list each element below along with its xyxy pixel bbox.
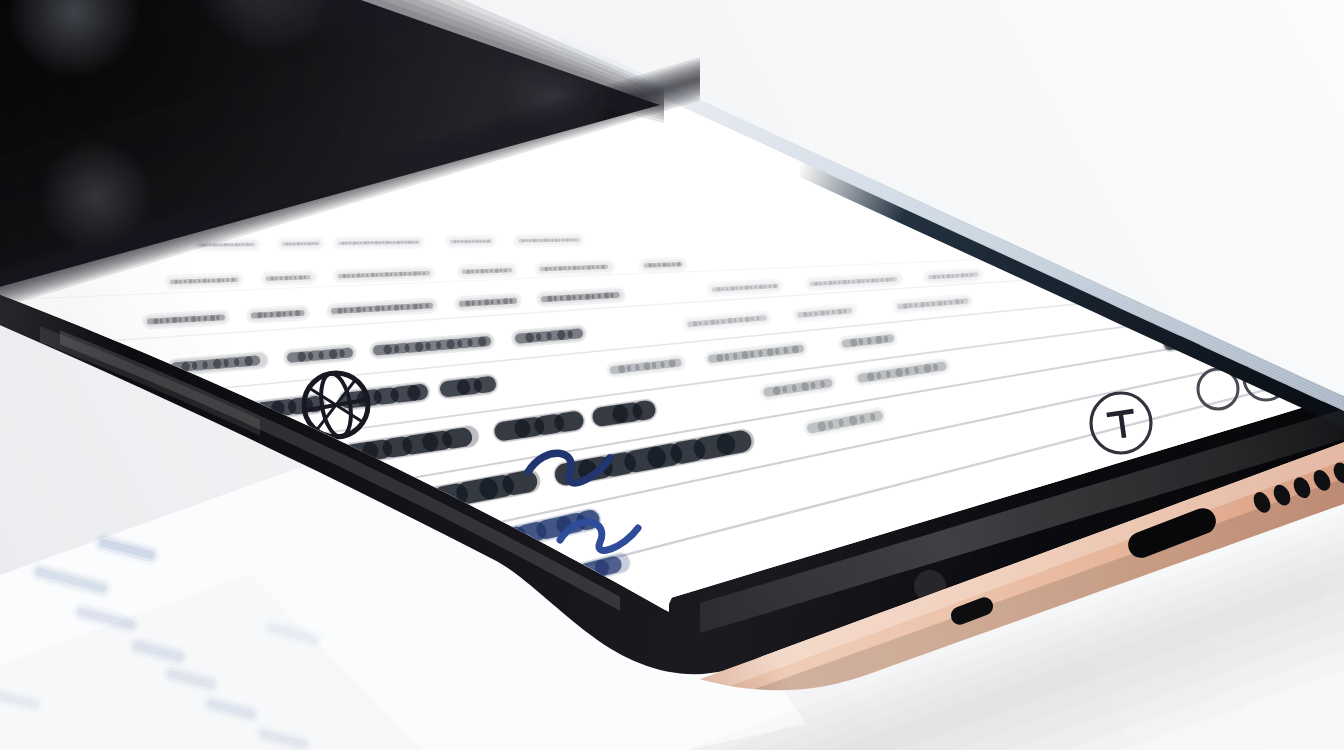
- button[interactable]: Smartphone showing an email list on a wh…: [0, 0, 1344, 750]
